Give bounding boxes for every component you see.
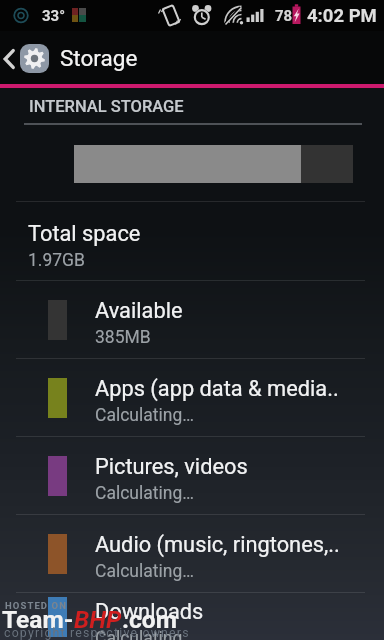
staticText: Calculating… xyxy=(95,628,194,640)
button[interactable]: Pictures, videos xyxy=(0,437,384,514)
staticText: INTERNAL STORAGE xyxy=(29,97,184,116)
staticText: Calculating… xyxy=(95,561,194,582)
staticText: Apps (app data & media.. xyxy=(95,376,339,402)
staticText: Total space xyxy=(28,221,141,247)
button[interactable]: Downloads xyxy=(0,593,384,640)
staticText: Available xyxy=(95,298,183,324)
staticText: Audio (music, ringtones,.. xyxy=(95,532,340,558)
staticText: Storage xyxy=(60,45,138,71)
staticText: .com xyxy=(122,605,177,634)
staticText: HOSTED ON xyxy=(5,600,68,611)
button[interactable]: Available xyxy=(0,281,384,358)
staticText: 385MB xyxy=(95,327,151,348)
staticText: copyright respective owners xyxy=(4,626,190,640)
staticText: 78 xyxy=(275,7,293,25)
staticText: Calculating… xyxy=(95,405,194,426)
staticText: 1.97GB xyxy=(28,250,85,271)
button[interactable]: Apps (app data & media.. xyxy=(0,359,384,436)
staticText: Team- xyxy=(2,605,74,634)
button[interactable]: Navigate up to Settings xyxy=(0,31,49,84)
staticText: Pictures, videos xyxy=(95,454,248,480)
button[interactable]: Audio (music, ringtones,.. xyxy=(0,515,384,592)
staticText: Downloads xyxy=(95,599,204,625)
button[interactable]: Total space xyxy=(0,202,384,280)
staticText: 4:02 PM xyxy=(307,5,377,27)
staticText: 33° xyxy=(42,7,66,25)
staticText: BHP xyxy=(74,605,122,634)
staticText: Calculating… xyxy=(95,483,194,504)
